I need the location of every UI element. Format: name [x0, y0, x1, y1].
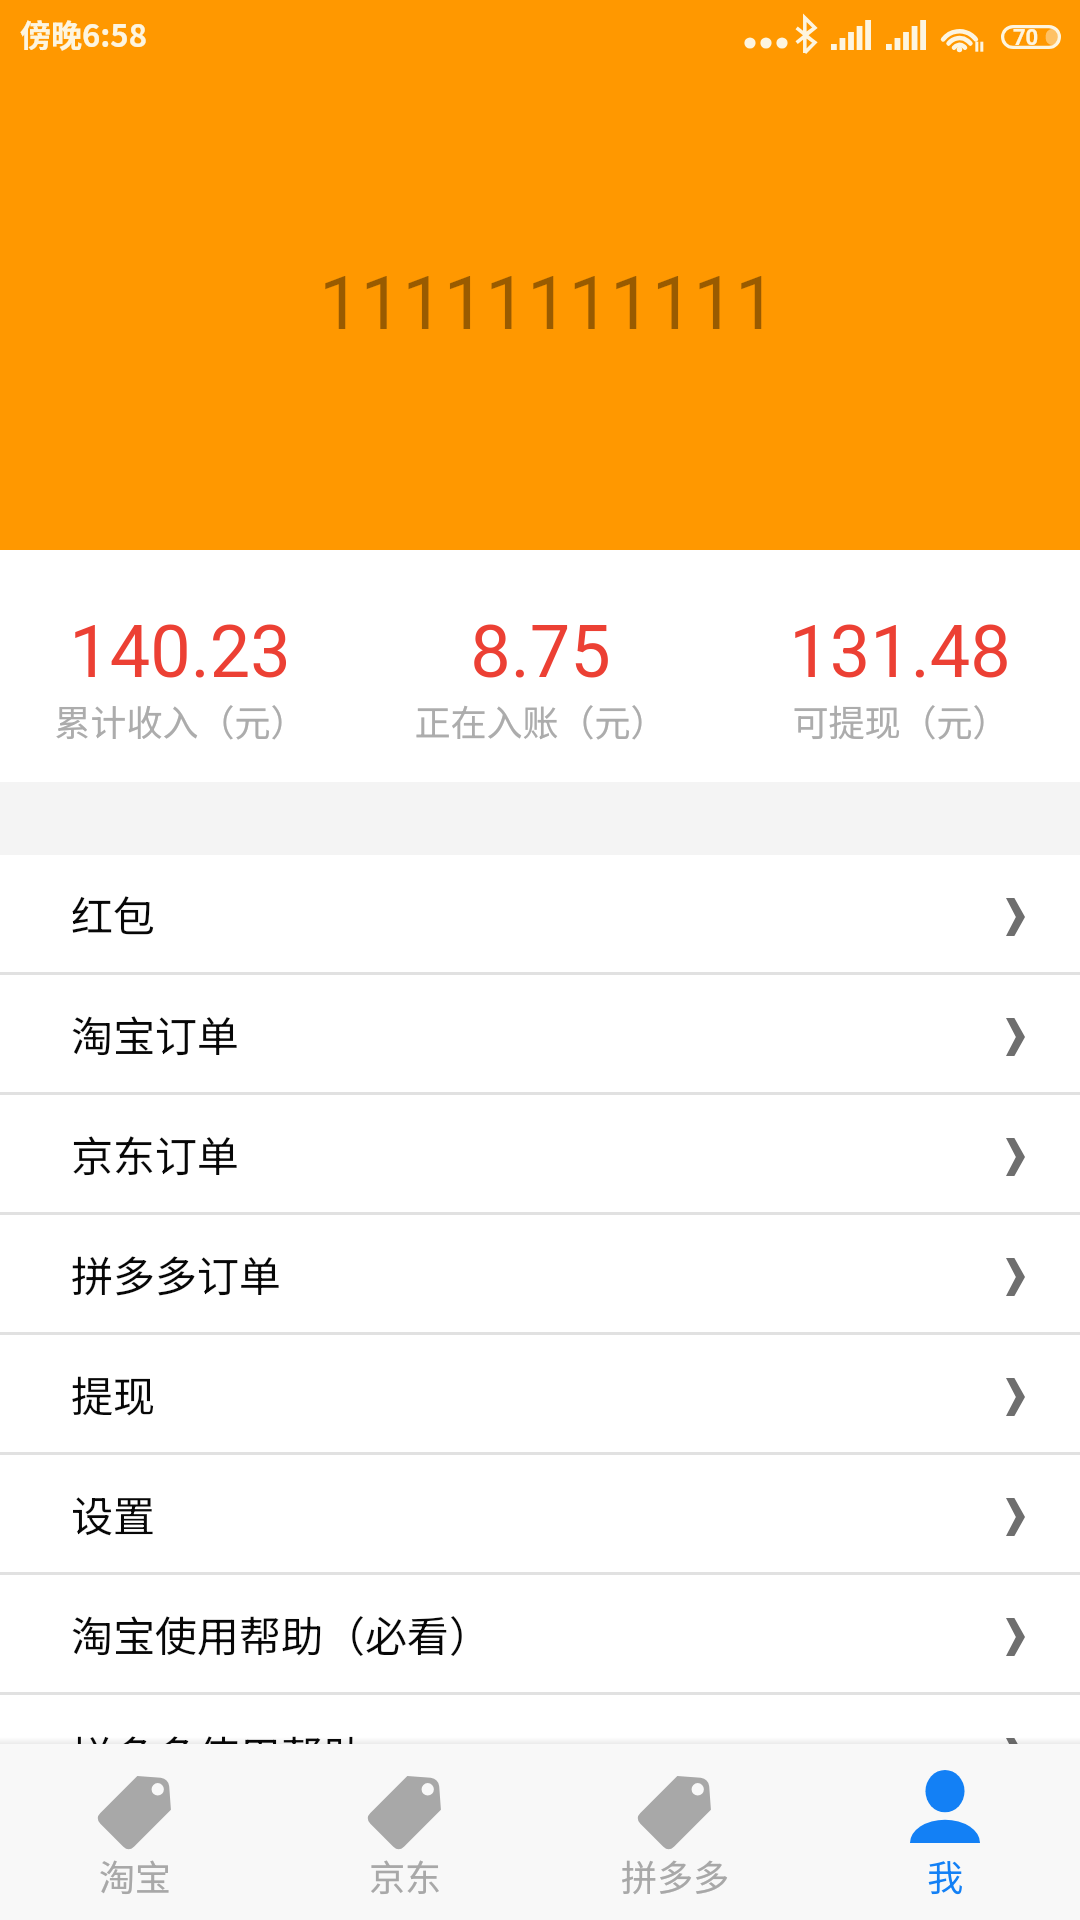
staticText: 淘宝使用帮助（必看） [71, 1603, 492, 1664]
button[interactable]: 红包 [0, 855, 1080, 975]
button[interactable]: 131.48 [720, 550, 1080, 746]
button[interactable]: 淘宝订单 [0, 975, 1080, 1095]
staticText: 11111111111 [319, 260, 777, 347]
button[interactable]: 提现 [0, 1335, 1080, 1455]
button[interactable]: 拼多多 [540, 1744, 810, 1920]
staticText: 傍晚6:58 [20, 11, 147, 56]
staticText: 提现 [71, 1363, 156, 1424]
button[interactable]: 拼多多订单 [0, 1215, 1080, 1335]
button[interactable]: 140.23 [0, 550, 360, 746]
button[interactable]: 淘宝使用帮助（必看） [0, 1575, 1080, 1695]
button[interactable]: 8.75 [360, 550, 720, 746]
staticText: 拼多多使用帮助 [71, 1723, 366, 1744]
staticText: 70 [1013, 25, 1039, 51]
button[interactable]: 京东订单 [0, 1095, 1080, 1215]
staticText: 京东订单 [71, 1123, 240, 1184]
staticText: 我 [927, 1849, 964, 1901]
staticText: 淘宝订单 [71, 1003, 240, 1064]
staticText: 8.75 [470, 610, 611, 694]
staticText: 拼多多 [621, 1849, 730, 1901]
button[interactable]: 京东 [270, 1744, 540, 1920]
staticText: 京东 [369, 1849, 442, 1901]
staticText: 累计收入（元） [54, 694, 307, 746]
staticText: 拼多多订单 [71, 1243, 282, 1304]
button[interactable]: 设置 [0, 1455, 1080, 1575]
staticText: 设置 [71, 1483, 156, 1544]
staticText: 红包 [71, 883, 156, 944]
staticText: 140.23 [69, 610, 291, 694]
button[interactable]: 我 [810, 1744, 1080, 1920]
staticText: 淘宝 [99, 1849, 172, 1901]
staticText: 正在入账（元） [414, 694, 667, 746]
staticText: 可提现（元） [792, 694, 1009, 746]
staticText: 131.48 [789, 610, 1011, 694]
button[interactable]: 拼多多使用帮助 [0, 1695, 1080, 1744]
button[interactable]: 淘宝 [0, 1744, 270, 1920]
